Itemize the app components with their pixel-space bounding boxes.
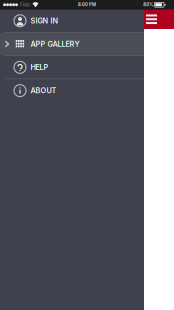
staticText: 8:00 PM	[78, 2, 96, 7]
staticText: 80%	[143, 2, 153, 7]
button[interactable]: HELP	[0, 56, 144, 79]
staticText: Fido	[20, 2, 30, 8]
staticText: ABOUT	[30, 86, 56, 95]
staticText: HELP	[30, 63, 48, 72]
staticText: SIGN IN	[30, 16, 58, 25]
button[interactable]: APP GALLERY	[0, 33, 144, 55]
button[interactable]: Menu	[143, 9, 160, 29]
staticText: APP GALLERY	[30, 40, 79, 48]
button[interactable]: SIGN IN	[0, 9, 144, 32]
button[interactable]: ABOUT	[0, 79, 144, 102]
